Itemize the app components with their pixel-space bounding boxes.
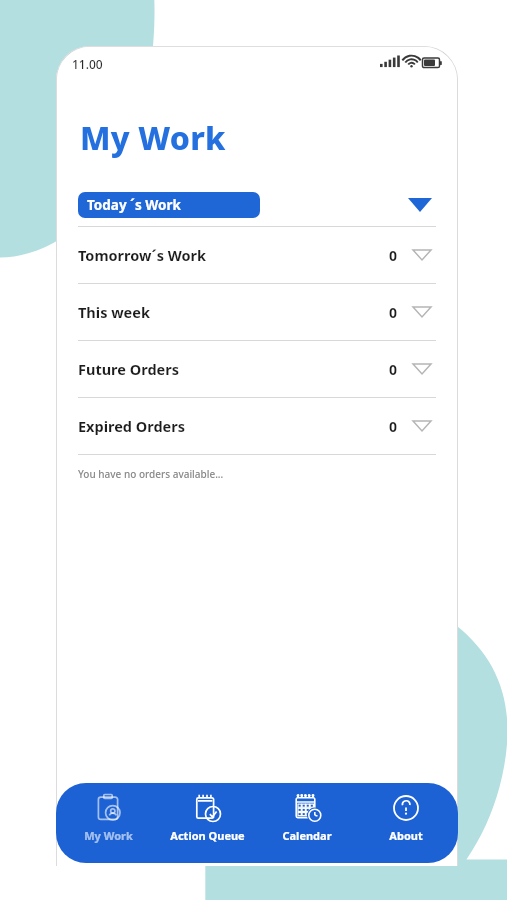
staticText: Calendar	[282, 828, 332, 843]
button[interactable]: Today ´s Work	[56, 184, 458, 227]
button[interactable]: Future Orders	[56, 341, 458, 398]
other: Calendar	[292, 793, 322, 823]
staticText: Action Queue	[170, 828, 245, 843]
staticText: My Work	[80, 116, 226, 160]
staticText: About	[389, 828, 423, 843]
button[interactable]: This week	[56, 284, 458, 341]
button[interactable]: Tomorrow´s Work	[56, 227, 458, 284]
other: About	[391, 793, 421, 823]
staticText: 0	[389, 417, 398, 436]
staticText: This week	[78, 302, 150, 322]
other: My Work	[93, 793, 123, 823]
button[interactable]: Action Queue	[160, 789, 254, 843]
button[interactable]: Calendar	[260, 789, 354, 843]
staticText: My Work	[84, 828, 133, 843]
staticText: You have no orders available...	[78, 467, 224, 481]
staticText: Today ´s Work	[87, 196, 181, 214]
staticText: Future Orders	[78, 359, 179, 379]
button[interactable]: Expired Orders	[56, 398, 458, 455]
other: Action Queue	[192, 793, 222, 823]
staticText: 11.00	[72, 56, 103, 72]
button[interactable]: My Work	[61, 789, 155, 843]
staticText: Tomorrow´s Work	[78, 245, 207, 265]
staticText: 0	[389, 246, 398, 265]
staticText: 0	[389, 303, 398, 322]
staticText: Expired Orders	[78, 416, 186, 436]
staticText: 0	[389, 360, 398, 379]
button[interactable]: About	[359, 789, 453, 843]
